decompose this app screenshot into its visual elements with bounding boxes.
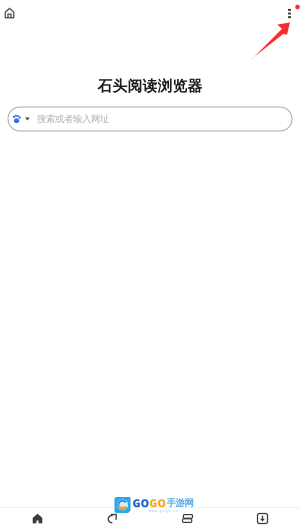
button[interactable]: Tabs <box>150 508 225 528</box>
button[interactable]: Home <box>0 0 23 26</box>
staticText: w w w . g o g o . c n <box>148 509 177 513</box>
button[interactable]: Home <box>0 508 75 528</box>
staticText: GO <box>149 496 166 510</box>
button[interactable]: More options <box>276 0 300 25</box>
staticText: 搜索或者输入网址 <box>37 113 109 125</box>
button[interactable]: Downloads <box>225 508 300 528</box>
staticText: 手游网 <box>166 497 193 509</box>
button[interactable]: 搜索或者输入网址 <box>8 107 292 131</box>
button[interactable]: Refresh <box>75 508 150 528</box>
staticText: 石头阅读浏览器 <box>97 77 202 95</box>
staticText: GO <box>132 496 149 510</box>
